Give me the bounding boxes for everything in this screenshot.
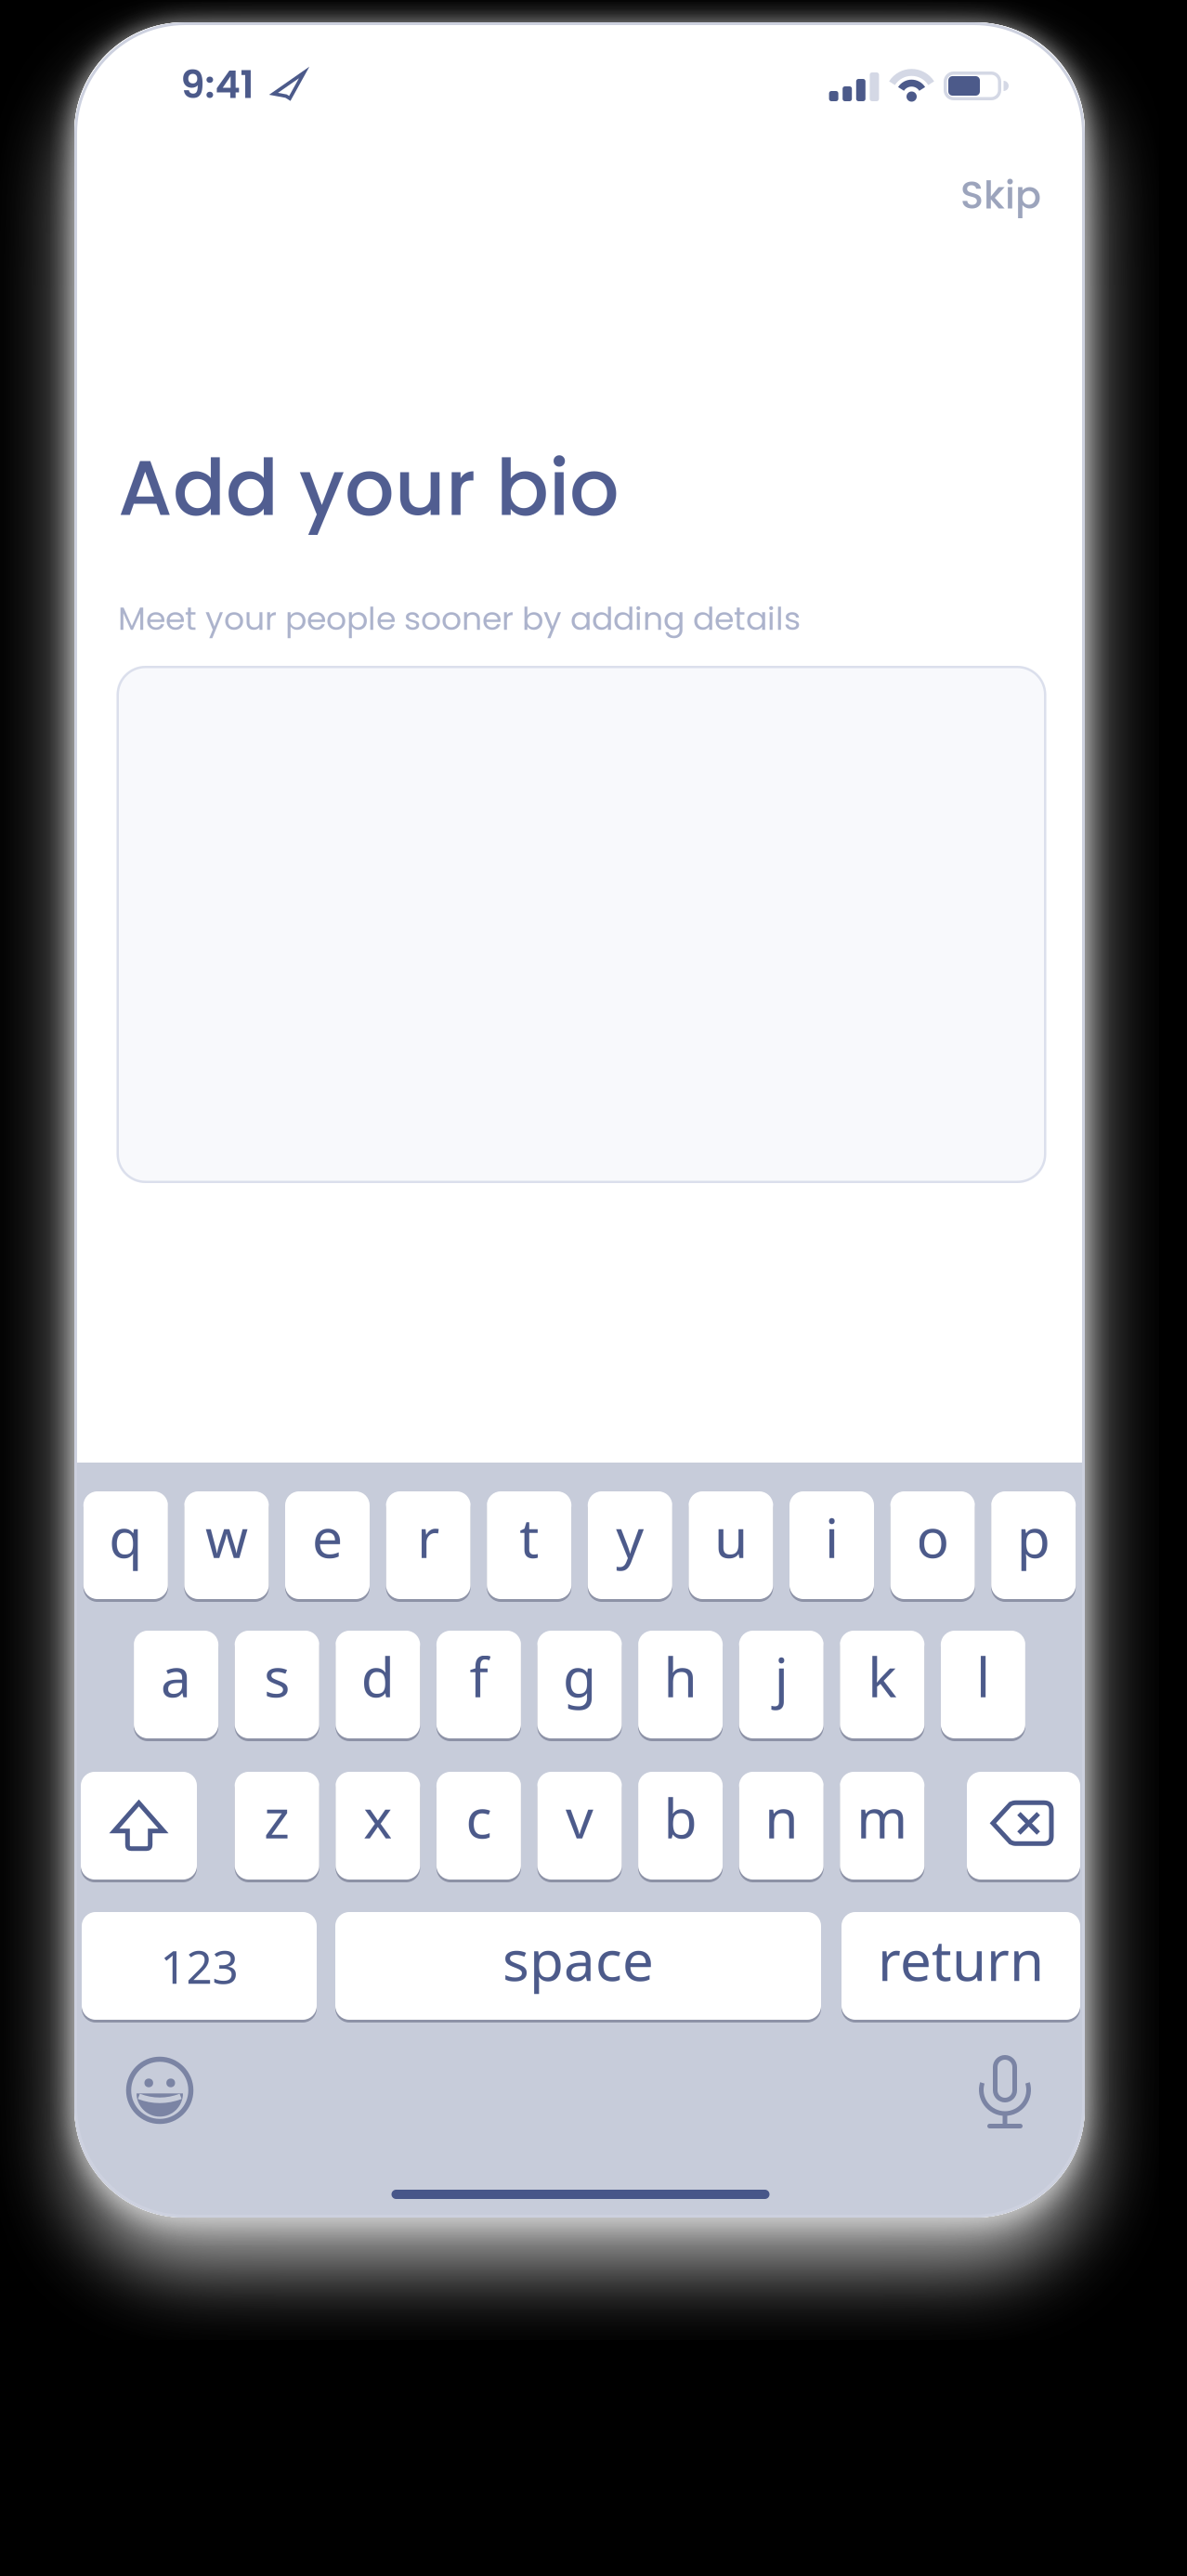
button[interactable]: Skip [74,168,1085,222]
staticText: g [563,1640,596,1712]
staticText: space [502,1922,654,1996]
staticText: h [664,1640,697,1712]
staticText: p [1017,1501,1050,1573]
button[interactable]: n [739,1772,824,1880]
staticText: 123 [160,1935,238,1996]
button[interactable]: l [941,1631,1025,1738]
button[interactable]: m [840,1772,924,1880]
button[interactable]: Delete [967,1772,1080,1880]
staticText: y [616,1501,644,1573]
button[interactable]: q [83,1491,168,1599]
staticText: r [417,1501,439,1573]
button[interactable]: z [235,1772,319,1880]
staticText: Skip [960,168,1041,222]
button[interactable]: Shift [81,1772,197,1880]
staticText: j [774,1640,788,1712]
button[interactable]: b [638,1772,723,1880]
button[interactable]: o [890,1491,975,1599]
button[interactable]: Dictation [981,2055,1029,2128]
staticText: i [825,1501,839,1573]
staticText: t [519,1501,539,1573]
staticText: a [161,1640,191,1712]
button[interactable]: c [436,1772,521,1880]
button[interactable]: a [134,1631,218,1738]
staticText: d [361,1640,395,1712]
button[interactable]: x [336,1772,420,1880]
button[interactable]: w [184,1491,269,1599]
button[interactable]: u [689,1491,773,1599]
button[interactable]: d [336,1631,420,1738]
button[interactable]: return [841,1912,1080,2020]
staticText: u [714,1501,748,1573]
button[interactable]: f [436,1631,521,1738]
staticText: w [205,1501,248,1573]
staticText: m [857,1781,908,1853]
button[interactable]: j [739,1631,824,1738]
staticText: s [264,1640,290,1712]
staticText: n [765,1781,798,1853]
staticText: x [363,1781,392,1853]
staticText: Add your bio [118,433,620,542]
staticText: v [566,1781,593,1853]
staticText: return [878,1922,1044,1996]
staticText: Meet your people sooner by adding detail… [118,596,801,641]
button[interactable]: h [638,1631,723,1738]
button[interactable]: e [285,1491,370,1599]
staticText: 9:41 [181,58,254,111]
staticText: o [916,1501,949,1573]
button[interactable]: Emoji [124,2055,195,2126]
staticText: q [109,1501,142,1573]
button[interactable]: space [335,1912,821,2020]
button[interactable]: y [588,1491,672,1599]
button[interactable]: s [235,1631,319,1738]
staticText: k [868,1640,897,1712]
staticText: f [469,1640,488,1712]
staticText: b [664,1781,697,1853]
staticText: z [264,1781,290,1853]
button[interactable]: i [789,1491,874,1599]
button[interactable]: 123 [82,1912,317,2020]
button[interactable]: v [537,1772,622,1880]
button[interactable]: t [487,1491,571,1599]
staticText: e [312,1501,343,1573]
staticText: l [976,1640,990,1712]
button[interactable]: g [537,1631,622,1738]
button[interactable]: p [991,1491,1076,1599]
staticText: c [466,1781,492,1853]
button[interactable]: k [840,1631,924,1738]
button[interactable]: r [386,1491,471,1599]
